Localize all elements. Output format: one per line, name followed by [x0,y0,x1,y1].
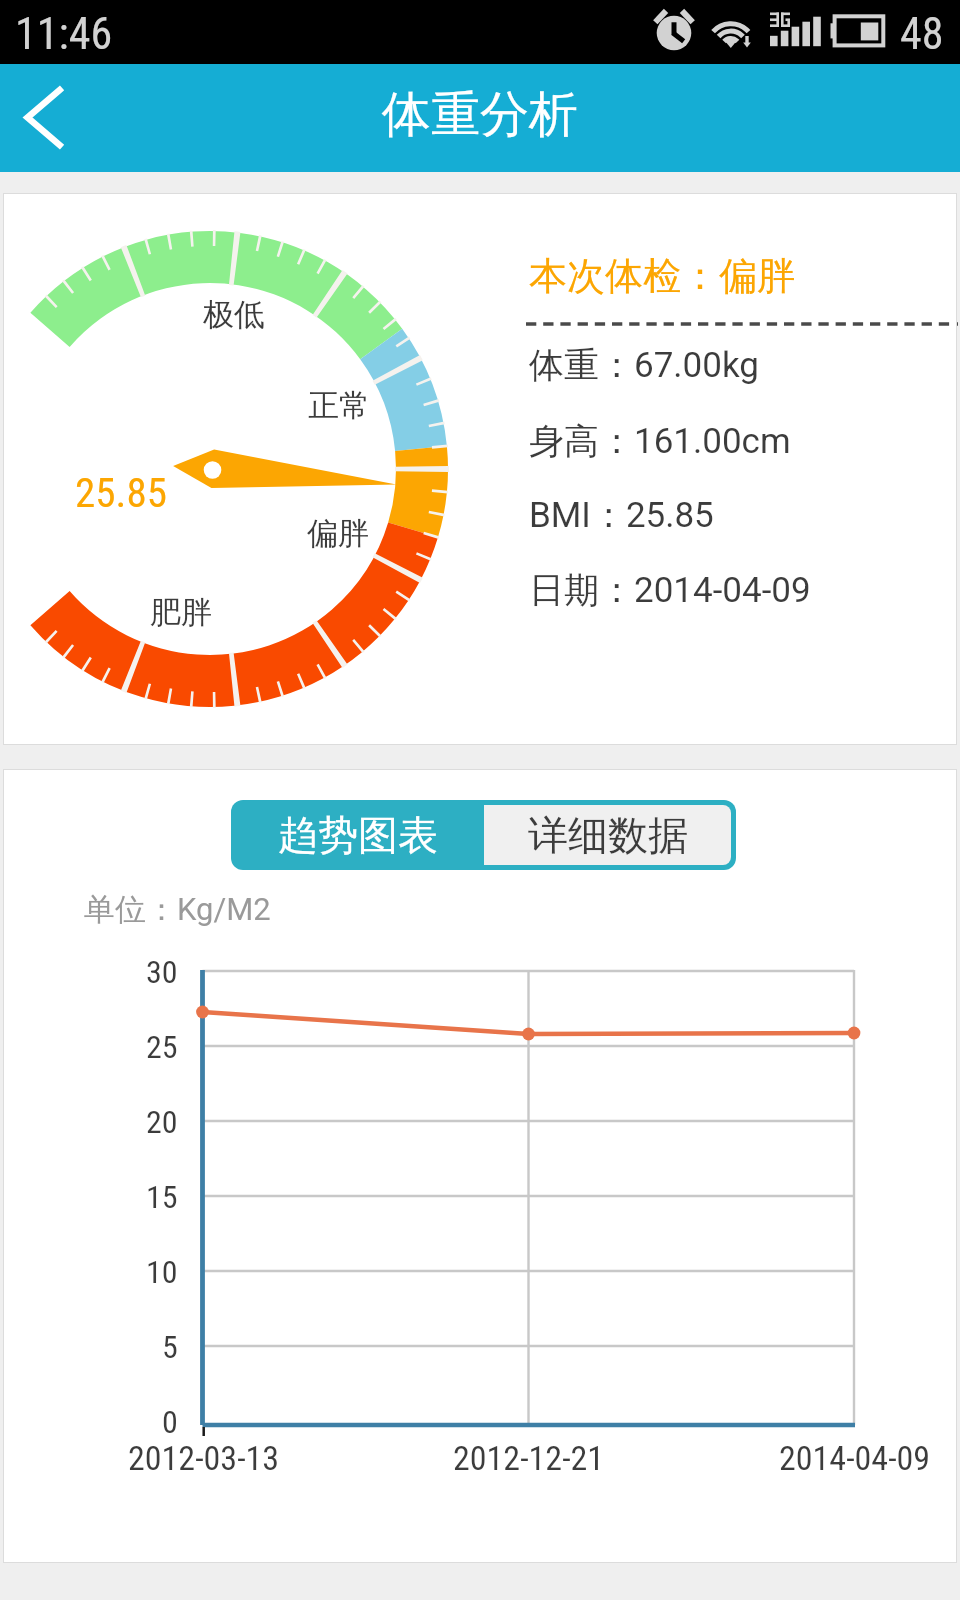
staticText: 30 [146,953,178,991]
staticText: 15 [146,1178,178,1216]
staticText: 10 [146,1253,178,1291]
staticText: 11:46 [15,8,113,60]
staticText: 正常 [308,386,370,425]
staticText: 极低 [203,295,265,334]
staticText: 0 [162,1403,178,1441]
staticText: 20 [146,1103,178,1141]
staticText: 体重分析 [382,84,578,146]
staticText: 趋势图表 [278,810,438,860]
staticText: 2014-04-09 [779,1438,931,1478]
staticText: 日期：2014-04-09 [529,568,811,612]
staticText: 详细数据 [528,810,688,860]
staticText: 身高：161.00cm [529,419,791,463]
button[interactable]: 详细数据 [484,805,731,865]
staticText: 48 [900,8,944,60]
staticText: 单位：Kg/M2 [84,890,271,929]
staticText: 偏胖 [307,514,369,553]
staticText: 体重：67.00kg [529,343,759,387]
button[interactable]: Back [0,64,92,172]
staticText: 2012-03-13 [128,1438,280,1478]
staticText: 2012-12-21 [453,1438,605,1478]
staticText: 肥胖 [150,593,212,632]
staticText: BMI：25.85 [529,493,714,537]
staticText: 5 [162,1328,178,1366]
button[interactable]: 趋势图表 [231,800,484,870]
staticText: 25.85 [75,469,167,517]
staticText: 25 [146,1028,178,1066]
staticText: 本次体检：偏胖 [529,252,795,300]
